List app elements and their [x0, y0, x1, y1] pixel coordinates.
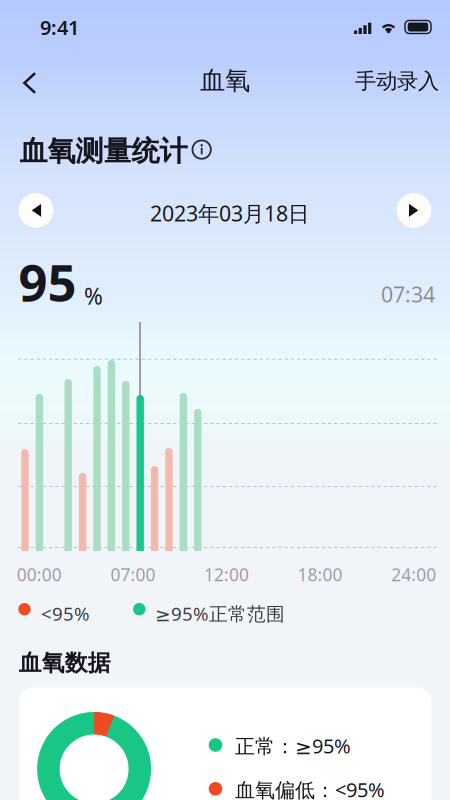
staticText: %: [84, 281, 103, 311]
button[interactable]: 返回: [12, 60, 50, 106]
staticText: 07:34: [381, 280, 435, 308]
staticText: 血氧数据: [19, 649, 111, 677]
staticText: 18:00: [298, 563, 343, 586]
staticText: 血氧偏低：<95%: [235, 776, 385, 800]
staticText: 07:00: [110, 563, 155, 586]
button[interactable]: 前一天: [19, 193, 53, 228]
staticText: 00:00: [17, 563, 62, 586]
staticText: 手动录入: [355, 68, 439, 94]
staticText: 正常：≥95%: [235, 732, 351, 759]
staticText: 12:00: [204, 563, 249, 586]
button[interactable]: 手动录入: [341, 58, 450, 104]
staticText: 9:41: [40, 14, 79, 41]
button[interactable]: 后一天: [397, 193, 431, 228]
staticText: 2023年03月18日: [150, 199, 309, 227]
staticText: 24:00: [391, 563, 436, 586]
staticText: <95%: [41, 601, 90, 626]
staticText: 血氧测量统计: [19, 134, 187, 168]
staticText: 95: [18, 248, 76, 315]
staticText: 血氧: [200, 65, 250, 96]
staticText: ≥95%正常范围: [155, 601, 285, 626]
